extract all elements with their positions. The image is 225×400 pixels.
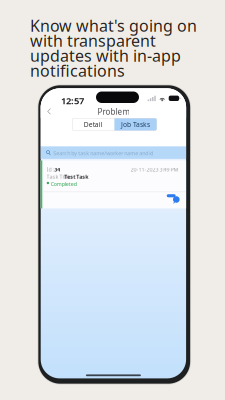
staticText: Id : xyxy=(46,166,53,173)
staticText: 12:57 xyxy=(61,94,84,107)
staticText: 34 xyxy=(54,166,60,173)
staticText: Problem xyxy=(97,106,129,117)
staticText: Detail xyxy=(84,120,103,129)
staticText: 20-11-2023 3:49 PM xyxy=(131,166,179,173)
button[interactable]: Back xyxy=(44,105,54,117)
staticText: Search by task name/worker name and id xyxy=(53,150,153,157)
button[interactable]: Detail xyxy=(72,118,114,131)
button[interactable]: Search by task name/worker name and id xyxy=(41,146,186,159)
staticText: Job Tasks xyxy=(121,120,150,129)
button[interactable]: Job Tasks xyxy=(114,118,157,131)
button[interactable]: Id : xyxy=(41,160,186,208)
staticText: updates with in-app xyxy=(30,45,181,66)
staticText: Test Task xyxy=(64,173,88,180)
staticText: with transparent xyxy=(30,30,156,51)
staticText: Task Title : xyxy=(46,173,71,180)
staticText: Know what's going on xyxy=(30,15,197,36)
staticText: Completed xyxy=(51,180,77,187)
staticText: notifications xyxy=(30,60,125,81)
